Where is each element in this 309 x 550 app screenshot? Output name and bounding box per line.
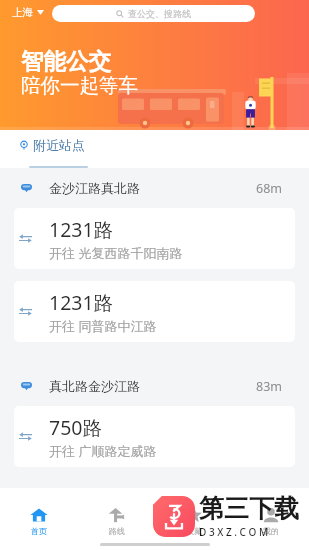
staticText: 智能公交 [21, 47, 111, 75]
staticText: 首页 [31, 526, 47, 536]
staticText: 开往 同普路中江路 [49, 317, 157, 335]
staticText: 附近站点 [33, 137, 85, 153]
button[interactable]: 真北路金沙江路 [0, 366, 309, 406]
staticText: 陪你一起等车 [21, 73, 138, 98]
staticText: 查公交、搜路线 [128, 8, 191, 19]
staticText: 68m [256, 180, 282, 197]
staticText: 开往 广顺路定威路 [49, 442, 157, 460]
staticText: 上海 [12, 6, 33, 19]
button[interactable]: 查公交、搜路线 [52, 5, 255, 22]
staticText: 第三下载 [199, 493, 299, 524]
button[interactable]: 首页 [0, 507, 78, 550]
button[interactable]: 上海 [10, 6, 46, 19]
button[interactable]: 路线 [78, 507, 155, 550]
staticText: 真北路金沙江路 [49, 378, 140, 394]
button[interactable]: 收藏 [155, 507, 232, 550]
staticText: 我的 [263, 526, 279, 536]
staticText: 1231路 [49, 289, 114, 316]
staticText: 路线 [109, 526, 125, 536]
staticText: 收藏 [186, 526, 202, 536]
staticText: 金沙江路真北路 [49, 180, 140, 196]
staticText: 83m [256, 378, 282, 395]
staticText: 开往 光复西路千阳南路 [49, 244, 183, 262]
button[interactable]: 附近站点 [0, 130, 309, 160]
button[interactable]: 1231路 [14, 208, 295, 269]
button[interactable]: 750路 [14, 406, 295, 467]
button[interactable]: 金沙江路真北路 [0, 168, 309, 208]
staticText: 750路 [49, 414, 102, 441]
staticText: 1231路 [49, 216, 114, 243]
button[interactable]: 我的 [232, 507, 309, 550]
staticText: D 3 X Z . C O M [199, 525, 269, 539]
button[interactable]: 1231路 [14, 281, 295, 342]
